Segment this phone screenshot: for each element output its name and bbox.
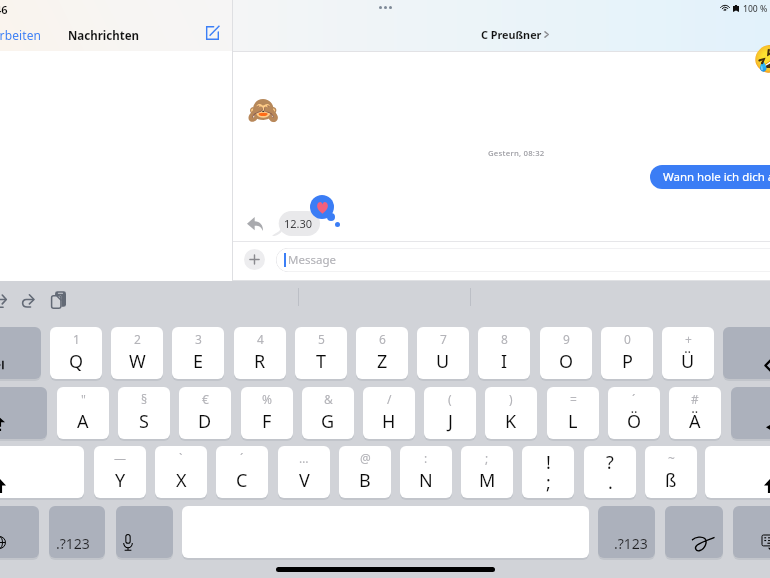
button[interactable]: Multitasking controls — [379, 6, 392, 9]
button[interactable]: Dictate — [116, 506, 173, 558]
button[interactable]: ´ — [216, 446, 268, 498]
staticText: J — [448, 409, 453, 434]
staticText: 1 — [73, 331, 80, 347]
staticText: .?123 — [56, 534, 90, 553]
staticText: + — [685, 331, 692, 347]
staticText: Ö — [627, 409, 642, 434]
button[interactable]: Wann hole ich dich ab — [650, 165, 770, 189]
button[interactable]: Return — [731, 387, 770, 439]
button[interactable]: Hide keyboard — [733, 506, 770, 558]
staticText: 46 — [0, 2, 8, 17]
staticText: S — [139, 409, 149, 434]
button[interactable]: .?123 — [598, 506, 655, 558]
button[interactable]: 2 — [111, 327, 163, 379]
staticText: X — [176, 468, 187, 493]
staticText: / — [387, 391, 392, 407]
button[interactable]: Change keyboard language — [0, 506, 39, 558]
button[interactable]: Backspace — [723, 327, 770, 379]
staticText: € — [202, 391, 209, 407]
button[interactable]: ) — [485, 387, 537, 439]
button[interactable]: ? — [584, 446, 636, 498]
staticText: & — [324, 391, 333, 407]
staticText: A — [77, 409, 89, 434]
button[interactable]: 0 — [601, 327, 653, 379]
staticText: C — [236, 468, 248, 493]
staticText: H — [382, 409, 396, 434]
button[interactable]: ; — [461, 446, 513, 498]
staticText: 3 — [195, 331, 202, 347]
staticText: Y — [115, 468, 126, 493]
button[interactable]: Message — [276, 248, 770, 272]
staticText: ; — [546, 470, 551, 495]
button[interactable]: Add attachment — [244, 249, 265, 270]
button[interactable]: New message — [198, 22, 226, 44]
button[interactable]: Shift — [705, 446, 770, 498]
staticText: @ — [360, 450, 371, 466]
button[interactable]: ( — [424, 387, 476, 439]
button[interactable]: Caps lock — [0, 387, 47, 439]
button[interactable]: Shift — [0, 446, 84, 498]
button[interactable]: .?123 — [49, 506, 105, 558]
button[interactable]: Handwriting — [665, 506, 723, 558]
staticText: … — [299, 450, 309, 466]
button[interactable]: 8 — [478, 327, 530, 379]
button[interactable]: " — [57, 387, 109, 439]
staticText: — — [114, 450, 127, 466]
staticText: Wann hole ich dich ab — [663, 169, 770, 185]
button[interactable]: : — [400, 446, 452, 498]
staticText: 2 — [134, 331, 141, 347]
staticText: % — [262, 391, 272, 407]
staticText: E — [193, 349, 204, 374]
button[interactable]: Tab — [0, 327, 41, 379]
button[interactable]: ! — [522, 446, 574, 498]
staticText: ! — [546, 450, 551, 475]
button[interactable]: 9 — [540, 327, 592, 379]
staticText: # — [691, 391, 699, 407]
button[interactable]: § — [118, 387, 170, 439]
staticText: Nachrichten — [68, 28, 139, 44]
button[interactable]: = — [547, 387, 599, 439]
button[interactable]: 6 — [356, 327, 408, 379]
button[interactable]: & — [302, 387, 354, 439]
staticText: M — [479, 468, 496, 493]
button[interactable]: @ — [339, 446, 391, 498]
button[interactable]: / — [363, 387, 415, 439]
staticText: I — [501, 349, 508, 374]
staticText: B — [359, 468, 371, 493]
button[interactable]: % — [241, 387, 293, 439]
button[interactable]: … — [278, 446, 330, 498]
staticText: . — [608, 470, 613, 495]
staticText: F — [262, 409, 272, 434]
staticText: ~ — [668, 450, 675, 466]
staticText: ; — [485, 450, 489, 466]
button[interactable]: ~ — [645, 446, 697, 498]
staticText: Bearbeiten — [0, 27, 42, 43]
staticText: ( — [448, 391, 452, 407]
button[interactable]: 4 — [234, 327, 286, 379]
button[interactable]: 5 — [295, 327, 347, 379]
button[interactable]: # — [669, 387, 721, 439]
button[interactable]: 12.30 — [272, 211, 320, 236]
staticText: 6 — [379, 331, 386, 347]
staticText: ´ — [632, 391, 636, 407]
button[interactable]: C Preußner — [480, 26, 558, 42]
button[interactable]: — — [94, 446, 146, 498]
staticText: 🙈 — [247, 95, 280, 125]
staticText: 4 — [257, 331, 264, 347]
button[interactable]: 7 — [417, 327, 469, 379]
staticText: W — [129, 349, 146, 374]
button[interactable]: ´ — [608, 387, 660, 439]
button[interactable]: € — [179, 387, 231, 439]
staticText: L — [568, 409, 578, 434]
button[interactable]: 1 — [50, 327, 102, 379]
staticText: = — [570, 391, 577, 407]
staticText: ) — [509, 391, 513, 407]
button[interactable]: ` — [155, 446, 207, 498]
button[interactable]: Bearbeiten — [0, 26, 42, 43]
staticText: N — [419, 468, 433, 493]
button[interactable]: + — [662, 327, 714, 379]
staticText: Z — [377, 349, 388, 374]
staticText: .?123 — [614, 534, 648, 553]
button[interactable]: 3 — [172, 327, 224, 379]
